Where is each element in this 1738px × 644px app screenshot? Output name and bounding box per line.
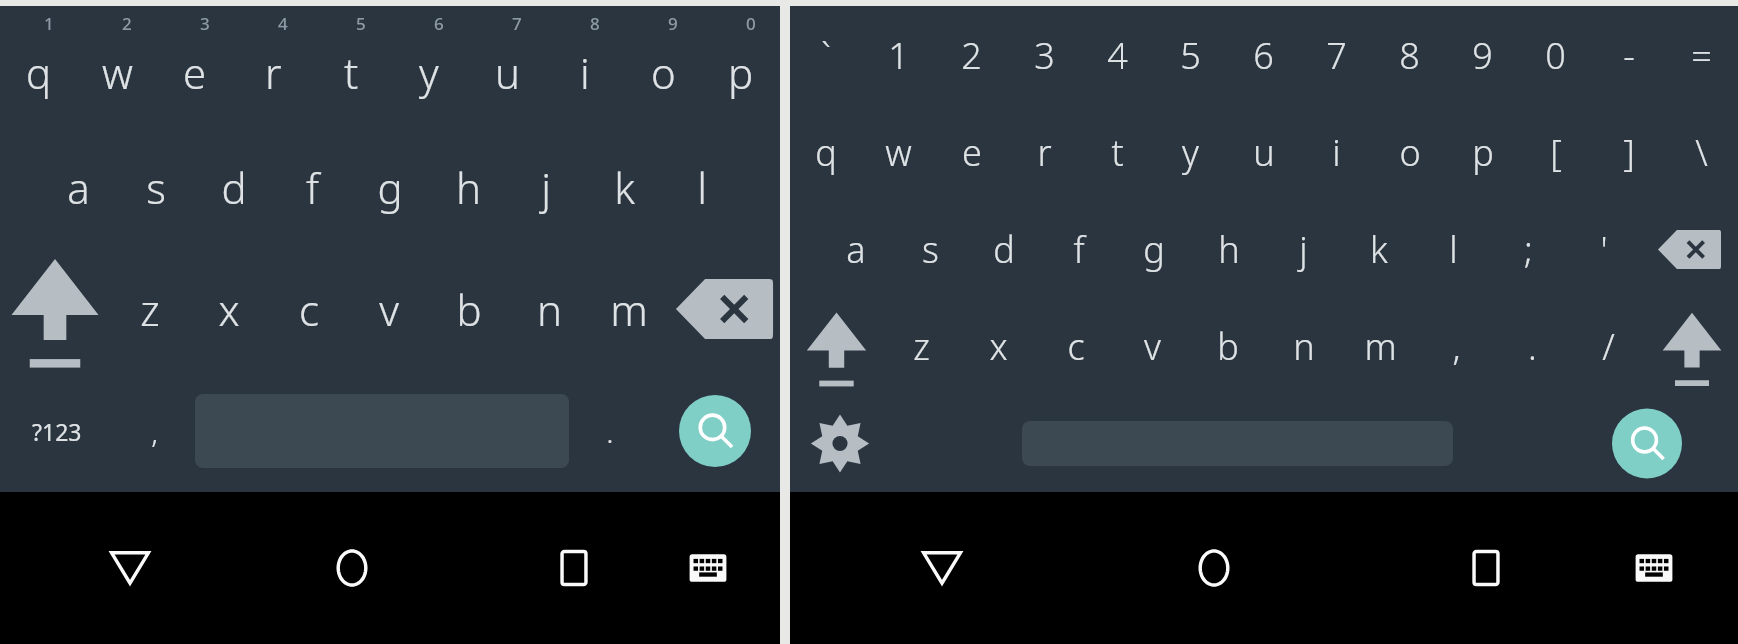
button[interactable]: g (351, 127, 429, 248)
button[interactable]: p (1446, 104, 1519, 201)
button[interactable]: Backspace (669, 248, 780, 370)
button[interactable]: 3 (156, 6, 234, 127)
button[interactable]: 6 (390, 6, 468, 127)
staticText: j (541, 159, 551, 216)
button[interactable]: v (349, 248, 429, 370)
button[interactable]: ?123 (0, 370, 114, 492)
button[interactable]: Recents (1430, 492, 1542, 644)
button[interactable]: a (819, 201, 893, 298)
button[interactable]: Back (886, 492, 998, 644)
button[interactable]: s (893, 201, 967, 298)
button[interactable]: Settings (790, 395, 890, 492)
button[interactable]: 2 (78, 6, 156, 127)
button[interactable]: s (117, 127, 195, 248)
button[interactable]: Back (76, 492, 183, 644)
button[interactable]: 8 (1373, 6, 1446, 104)
button[interactable]: e (935, 104, 1008, 201)
button[interactable]: . (1494, 298, 1570, 395)
button[interactable]: 9 (624, 6, 702, 127)
button[interactable]: t (1081, 104, 1154, 201)
button[interactable]: 1 (0, 6, 78, 127)
button[interactable]: a (39, 127, 117, 248)
button[interactable]: , (1418, 298, 1494, 395)
button[interactable]: ' (1566, 201, 1641, 298)
button[interactable]: l (663, 127, 741, 248)
button[interactable]: 3 (1008, 6, 1081, 104)
button[interactable]: b (1190, 298, 1266, 395)
button[interactable]: 5 (1154, 6, 1227, 104)
button[interactable]: k (1341, 201, 1416, 298)
button[interactable]: x (960, 298, 1037, 395)
button[interactable]: Home (298, 492, 405, 644)
button[interactable]: w (862, 104, 935, 201)
button[interactable]: v (1114, 298, 1190, 395)
button[interactable]: Shift (790, 298, 883, 395)
staticText: d (993, 225, 1015, 274)
button[interactable]: x (189, 248, 269, 370)
button[interactable]: j (1266, 201, 1341, 298)
button[interactable]: g (1116, 201, 1191, 298)
button[interactable]: [ (1519, 104, 1592, 201)
button[interactable]: 8 (546, 6, 624, 127)
button[interactable]: n (1266, 298, 1342, 395)
button[interactable]: z (110, 248, 189, 370)
button[interactable]: 5 (312, 6, 390, 127)
button[interactable]: l (1416, 201, 1491, 298)
staticText: p (1472, 128, 1494, 177)
button[interactable]: o (1373, 104, 1446, 201)
button[interactable]: = (1665, 6, 1738, 104)
staticText: y (419, 44, 439, 101)
button[interactable]: 4 (1081, 6, 1154, 104)
staticText: e (183, 44, 207, 101)
button[interactable]: y (1154, 104, 1227, 201)
button[interactable]: Recents (520, 492, 627, 644)
button[interactable]: Shift (0, 248, 110, 370)
button[interactable]: Switch keyboard (654, 492, 761, 644)
button[interactable]: c (269, 248, 349, 370)
button[interactable]: r (1008, 104, 1081, 201)
button[interactable]: 0 (1519, 6, 1592, 104)
button[interactable]: k (585, 127, 663, 248)
button[interactable]: n (509, 248, 589, 370)
button[interactable]: j (507, 127, 585, 248)
button[interactable]: m (1342, 298, 1418, 395)
button[interactable]: ` (790, 6, 862, 104)
button[interactable]: Backspace (1641, 201, 1738, 298)
button[interactable]: Home (1158, 492, 1270, 644)
button[interactable]: f (273, 127, 351, 248)
button[interactable]: i (1300, 104, 1373, 201)
button[interactable]: 2 (935, 6, 1008, 104)
button[interactable]: . (569, 370, 650, 492)
button[interactable]: / (1570, 298, 1646, 395)
button[interactable]: 7 (468, 6, 546, 127)
button[interactable]: 1 (862, 6, 935, 104)
button[interactable]: Switch keyboard (1598, 492, 1710, 644)
button[interactable]: 4 (234, 6, 312, 127)
button[interactable]: 6 (1227, 6, 1300, 104)
button[interactable]: m (589, 248, 669, 370)
button[interactable]: , (114, 370, 195, 492)
button[interactable]: u (1227, 104, 1300, 201)
button[interactable]: ; (1491, 201, 1566, 298)
button[interactable]: Search (1585, 395, 1709, 492)
staticText: = (1691, 31, 1712, 80)
button[interactable]: 9 (1446, 6, 1519, 104)
button[interactable]: - (1592, 6, 1665, 104)
button[interactable]: d (195, 127, 273, 248)
button[interactable]: h (429, 127, 507, 248)
button[interactable]: c (1037, 298, 1114, 395)
button[interactable]: ] (1592, 104, 1665, 201)
button[interactable]: d (967, 201, 1041, 298)
button[interactable]: z (883, 298, 960, 395)
button[interactable]: f (1041, 201, 1116, 298)
button[interactable]: \ (1665, 104, 1738, 201)
button[interactable]: 0 (702, 6, 780, 127)
button[interactable]: Shift (1646, 298, 1738, 395)
button[interactable]: b (429, 248, 509, 370)
button[interactable]: h (1191, 201, 1266, 298)
button[interactable]: q (790, 104, 862, 201)
button[interactable]: Search (650, 370, 780, 492)
button[interactable]: 7 (1300, 6, 1373, 104)
